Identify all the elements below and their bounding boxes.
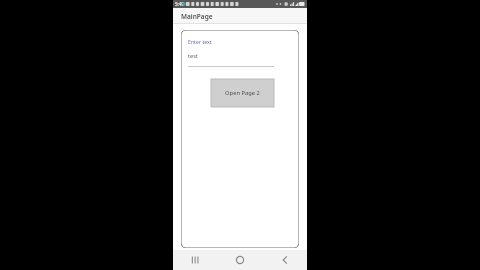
button[interactable]: Recent apps — [173, 250, 217, 270]
staticText: test — [188, 52, 198, 60]
button[interactable]: Home — [217, 250, 262, 270]
button[interactable]: Back — [262, 250, 307, 270]
staticText: MainPage — [181, 12, 213, 21]
staticText: 5:49 — [175, 1, 184, 7]
button[interactable]: Open Page 2 — [211, 79, 274, 107]
staticText: Enter text — [188, 38, 212, 45]
staticText: Open Page 2 — [225, 89, 260, 97]
